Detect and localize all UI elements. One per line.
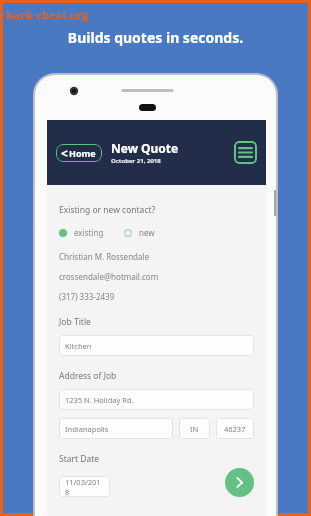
staticText: 1235 N. Holiday Rd. (65, 395, 134, 405)
staticText: existing (74, 227, 104, 238)
staticText: hack-cheat.org (6, 7, 89, 22)
staticText: Home (69, 147, 96, 159)
staticText: Kitchen (65, 341, 92, 351)
button[interactable]: 46237 (216, 418, 254, 439)
staticText: Job Title (59, 316, 91, 328)
staticText: 46237 (224, 424, 246, 434)
staticText: crossendale@hotmail.com (59, 271, 159, 282)
staticText: Builds quotes in seconds. (0, 28, 311, 47)
button[interactable]: 1235 N. Holiday Rd. (59, 389, 254, 410)
staticText: new (139, 227, 155, 238)
button[interactable]: Next (225, 468, 254, 497)
button[interactable]: Menu (234, 141, 257, 164)
staticText: Address of Job (59, 370, 117, 382)
button[interactable]: Indianapolis (59, 418, 173, 439)
staticText: New Quote (111, 140, 179, 156)
staticText: Indianapolis (65, 424, 109, 434)
staticText: Christian M. Rossendale (59, 251, 150, 262)
staticText: Existing or new contact? (59, 204, 156, 216)
button[interactable]: IN (179, 418, 210, 439)
staticText: 11/03/2018 (65, 477, 104, 497)
staticText: (317) 333-2439 (59, 291, 115, 302)
staticText: IN (190, 424, 199, 434)
button[interactable]: Home (56, 144, 102, 162)
staticText: October 21, 2018 (111, 157, 161, 165)
button[interactable]: new (124, 227, 155, 238)
button[interactable]: Kitchen (59, 335, 254, 356)
staticText: Start Date (59, 453, 100, 465)
button[interactable]: existing (59, 227, 104, 238)
button[interactable]: 11/03/2018 (59, 476, 110, 497)
